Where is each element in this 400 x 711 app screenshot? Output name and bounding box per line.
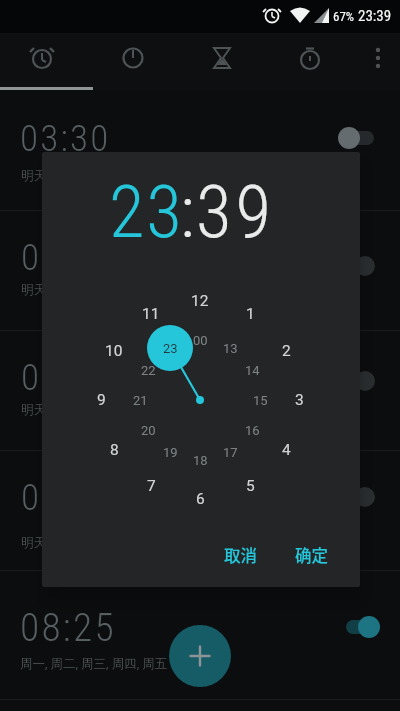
button[interactable] [332, 123, 382, 153]
staticText: 22 [141, 363, 156, 378]
staticText: 7 [147, 477, 156, 495]
staticText: 4 [282, 441, 291, 459]
staticText: 18 [193, 453, 208, 468]
staticText: 17 [223, 445, 238, 460]
button[interactable] [0, 450, 400, 570]
staticText: 21 [133, 393, 148, 408]
staticText: 00 [193, 333, 208, 348]
staticText: 05:30 [21, 236, 112, 279]
staticText: 19 [163, 445, 178, 460]
button[interactable] [0, 33, 91, 90]
button[interactable] [0, 330, 400, 450]
staticText: 确定 [295, 543, 328, 567]
staticText: 15 [253, 393, 268, 408]
button[interactable]: 23 [66, 152, 226, 272]
button[interactable] [169, 625, 231, 687]
staticText: 16 [245, 423, 260, 438]
staticText: 23:39 [358, 7, 392, 25]
staticText: 明天 [21, 535, 46, 551]
staticText: 14 [245, 363, 260, 378]
button[interactable] [338, 612, 382, 642]
staticText: 07:30 [21, 476, 112, 519]
staticText: 11 [142, 305, 160, 323]
button[interactable] [181, 33, 266, 90]
staticText: 23 [109, 169, 184, 255]
button[interactable] [0, 570, 400, 698]
staticText: 08:25 [20, 604, 116, 650]
button[interactable]: 39 [156, 152, 316, 272]
button[interactable] [91, 33, 181, 90]
staticText: 39 [196, 169, 276, 255]
staticText: 9 [97, 391, 106, 409]
staticText: 10 [105, 342, 123, 360]
staticText: 1 [246, 305, 255, 323]
staticText: 03:30 [20, 117, 111, 160]
staticText: 明天 [21, 402, 46, 418]
staticText: 13 [223, 341, 238, 356]
staticText: 8 [110, 441, 119, 459]
button[interactable] [0, 210, 400, 330]
staticText: 5 [246, 477, 255, 495]
button[interactable] [266, 33, 354, 90]
staticText: 3 [295, 391, 304, 409]
button[interactable]: 取消 [160, 525, 320, 585]
staticText: 2 [282, 342, 291, 360]
staticText: 取消 [224, 543, 257, 567]
staticText: 6 [196, 490, 205, 508]
staticText: 06:30 [21, 356, 112, 399]
button[interactable] [0, 90, 400, 210]
staticText: 67% [333, 9, 355, 24]
staticText: : [180, 169, 195, 255]
staticText: 12 [191, 292, 209, 310]
button[interactable] [354, 33, 400, 90]
button[interactable]: 确定 [231, 525, 391, 585]
staticText: 明天 [21, 168, 46, 184]
staticText: 周一, 周二, 周三, 周四, 周五 [20, 656, 168, 672]
staticText: 20 [141, 423, 156, 438]
staticText: 明天 [21, 282, 46, 298]
staticText: 23 [163, 341, 178, 356]
